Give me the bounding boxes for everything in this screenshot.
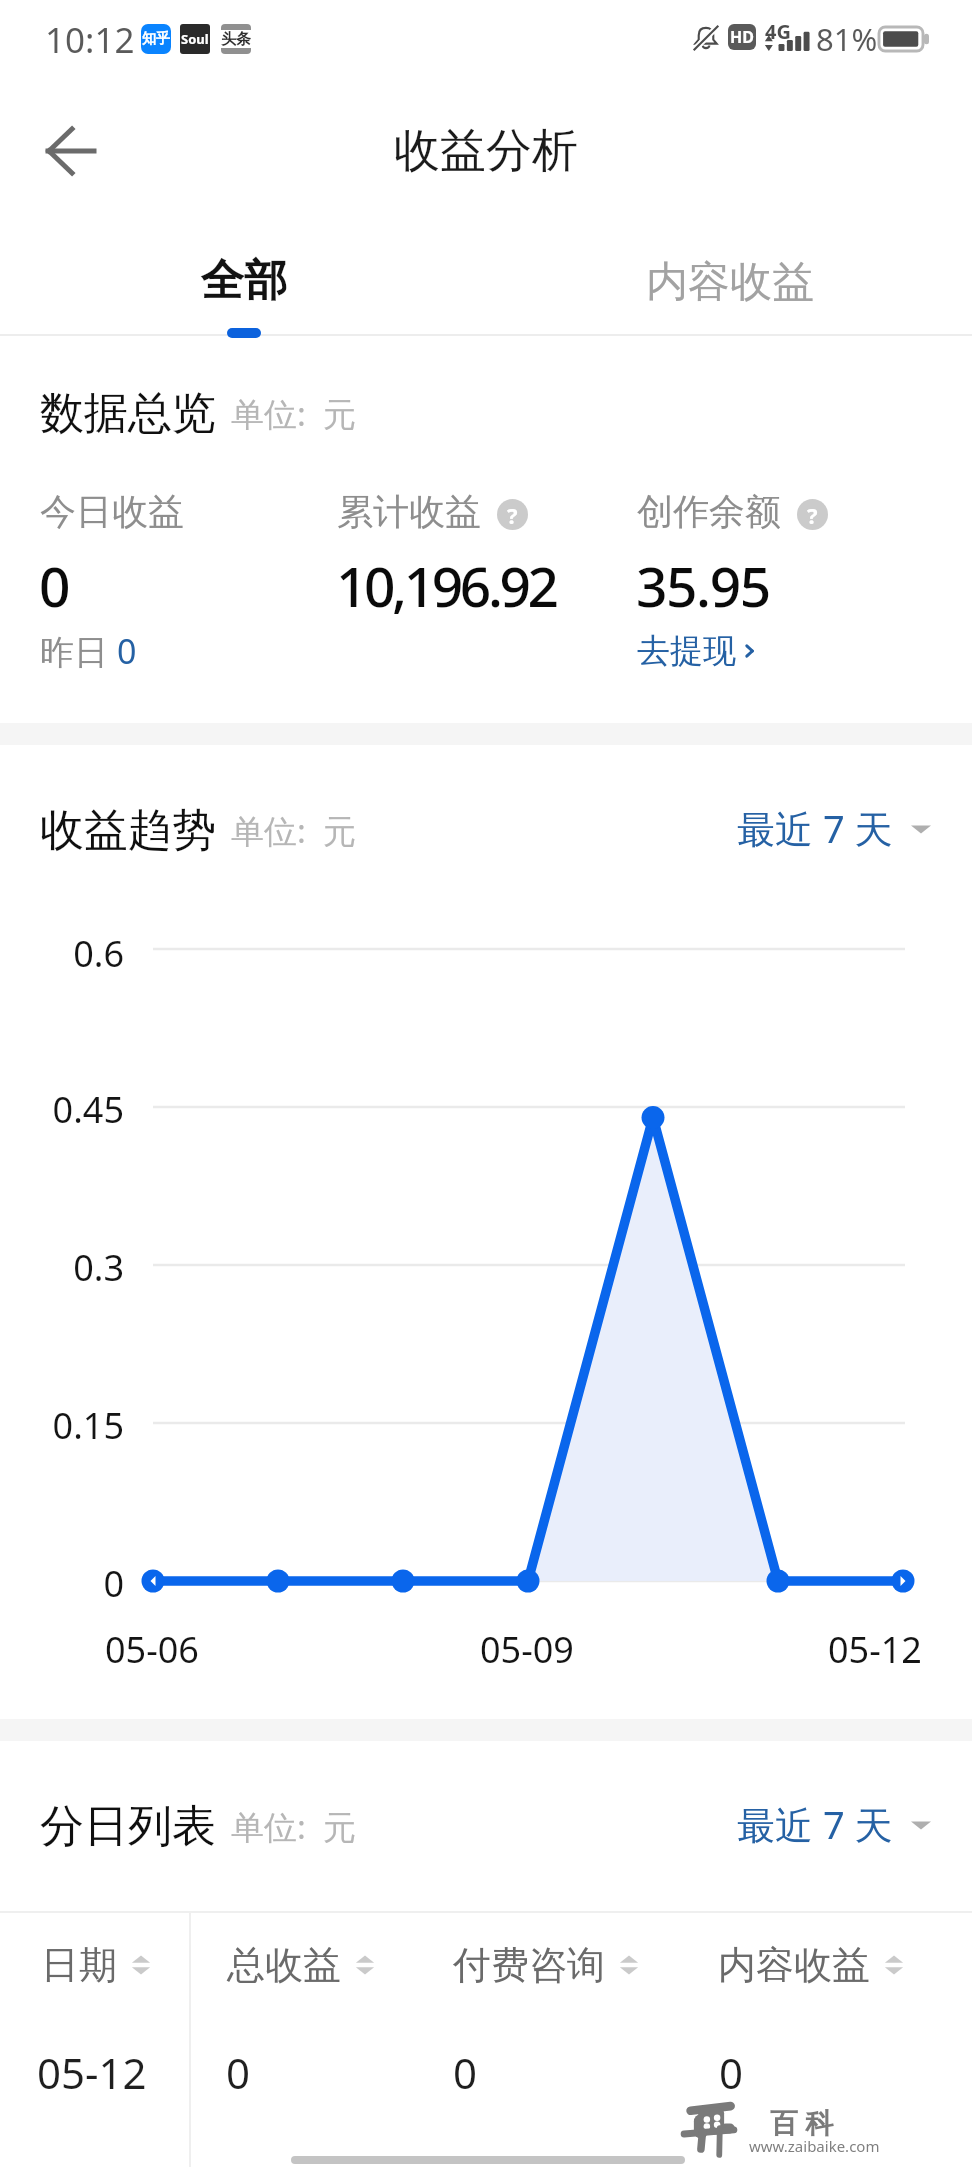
staticText: 81%	[816, 18, 878, 60]
staticText: 内容收益	[646, 256, 814, 309]
staticText: 收益趋势	[40, 803, 216, 858]
button[interactable]: 去提现	[637, 630, 760, 672]
staticText: 0.3	[4, 1243, 124, 1292]
staticText: 内容收益	[718, 1941, 870, 1989]
button[interactable]: 全部	[0, 230, 486, 335]
staticText: 分日列表	[40, 1799, 216, 1854]
staticText: 去提现	[637, 630, 736, 672]
staticText: 10:12	[45, 16, 135, 64]
button[interactable]: 付费咨询	[453, 1941, 641, 1989]
staticText: 05-09	[480, 1625, 574, 1674]
staticText: 4G	[765, 18, 791, 45]
button[interactable]: 最近 7 天	[737, 1798, 931, 1850]
staticText: 35.95	[636, 548, 770, 623]
staticText: 总收益	[227, 1941, 341, 1989]
staticText: 最近 7 天	[737, 1798, 893, 1850]
staticText: 日期	[41, 1941, 117, 1989]
button[interactable]: Back	[28, 110, 110, 192]
staticText: 全部	[201, 254, 287, 308]
staticText: 0	[719, 2044, 744, 2101]
staticText: 10,196.92	[336, 548, 556, 623]
staticText: 百 科	[770, 2103, 834, 2141]
staticText: 0	[117, 628, 137, 674]
staticText: 0	[226, 2044, 251, 2101]
staticText: 05-06	[105, 1625, 199, 1674]
button[interactable]: 内容收益	[486, 230, 972, 335]
staticText: 单位: 元	[231, 808, 357, 853]
staticText: 今日收益	[40, 489, 184, 534]
staticText: ?	[507, 500, 518, 530]
button[interactable]: 总收益	[227, 1941, 377, 1989]
button[interactable]: Help	[497, 499, 528, 530]
staticText: 0	[453, 2044, 478, 2101]
staticText: 最近 7 天	[737, 802, 893, 854]
button[interactable]: 最近 7 天	[737, 802, 931, 854]
staticText: 0.6	[4, 929, 124, 978]
staticText: 0	[4, 1559, 124, 1608]
button[interactable]: 内容收益	[718, 1941, 906, 1989]
staticText: 昨日	[40, 628, 117, 674]
staticText: 05-12	[37, 2044, 147, 2101]
staticText: 头条	[221, 30, 251, 49]
staticText: 05-12	[828, 1625, 922, 1674]
button[interactable]: 日期	[41, 1941, 153, 1989]
staticText: Soul	[181, 30, 209, 48]
staticText: 累计收益	[337, 489, 481, 534]
staticText: 0.15	[4, 1401, 124, 1450]
button[interactable]: Help	[797, 499, 828, 530]
staticText: 知乎	[142, 30, 170, 48]
staticText: 单位: 元	[231, 391, 357, 436]
staticText: 付费咨询	[453, 1941, 605, 1989]
staticText: 0	[39, 548, 71, 623]
staticText: 创作余额	[637, 489, 781, 534]
staticText: 单位: 元	[231, 1804, 357, 1849]
staticText: www.zaibaike.com	[749, 2136, 880, 2156]
staticText: HD	[730, 26, 754, 48]
staticText: ?	[807, 500, 818, 530]
staticText: 收益分析	[394, 122, 578, 180]
staticText: 数据总览	[40, 386, 216, 441]
staticText: 0.45	[4, 1085, 124, 1134]
